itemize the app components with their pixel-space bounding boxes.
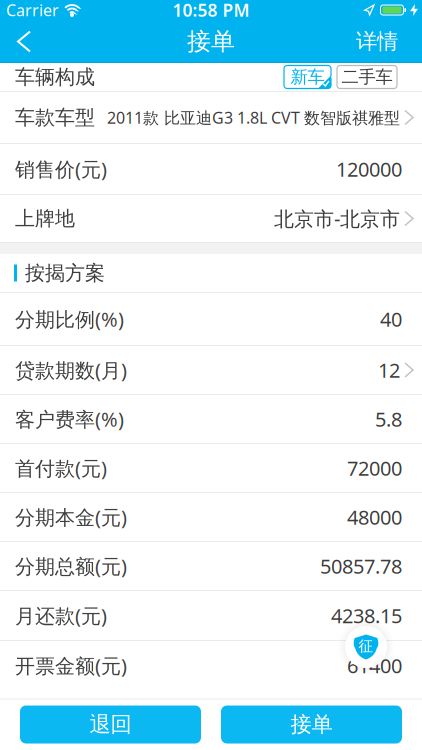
staticText: 按揭方案 [25, 261, 105, 285]
staticText: 10:58 PM [172, 0, 249, 21]
button[interactable]: 征信 [345, 626, 387, 668]
staticText: 分期本金(元) [15, 504, 127, 530]
staticText: 征 [358, 637, 373, 655]
staticText: 车辆构成 [15, 65, 95, 89]
staticText: 48000 [347, 504, 402, 530]
staticText: 接单 [290, 711, 332, 738]
staticText: 分期总额(元) [15, 553, 127, 579]
staticText: 车款车型 [15, 105, 95, 130]
staticText: 二手车 [341, 66, 392, 88]
button[interactable]: 贷款期数(月) [0, 346, 422, 394]
staticText: 客户费率(%) [15, 406, 124, 432]
staticText: 120000 [336, 156, 402, 182]
staticText: 退回 [89, 711, 131, 738]
button[interactable]: 上牌地 [0, 195, 422, 242]
staticText: 开票金额(元) [15, 652, 127, 679]
staticText: 新车 [290, 66, 324, 88]
staticText: 4238.15 [331, 602, 402, 629]
button[interactable]: 二手车 [337, 65, 397, 88]
button[interactable]: 车款车型 [0, 92, 422, 143]
staticText: Carrier [6, 0, 59, 21]
button[interactable]: 详情 [356, 20, 422, 63]
staticText: 72000 [347, 455, 402, 481]
staticText: 北京市-北京市 [274, 205, 400, 232]
staticText: 销售价(元) [15, 156, 107, 182]
staticText: 50857.78 [320, 553, 402, 579]
button[interactable]: 退回 [20, 705, 201, 743]
staticText: 月还款(元) [15, 602, 107, 629]
button[interactable]: 新车 [284, 65, 331, 88]
staticText: 详情 [356, 28, 398, 55]
staticText: 首付款(元) [15, 455, 107, 481]
button[interactable]: 返回 [0, 20, 46, 63]
staticText: 2011款 比亚迪G3 1.8L CVT 数智版祺雅型 [107, 107, 400, 128]
staticText: 分期比例(%) [15, 306, 124, 332]
staticText: 12 [378, 357, 400, 383]
staticText: 5.8 [375, 406, 402, 432]
staticText: 贷款期数(月) [15, 357, 127, 383]
staticText: 40 [380, 306, 402, 332]
button[interactable]: 接单 [221, 705, 402, 743]
staticText: 61400 [347, 652, 402, 679]
staticText: 接单 [187, 27, 235, 56]
staticText: 上牌地 [15, 206, 75, 231]
